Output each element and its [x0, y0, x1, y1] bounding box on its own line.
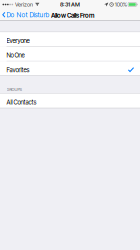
- staticText: All Contacts: [7, 98, 37, 106]
- staticText: GROUPS: [7, 87, 22, 92]
- staticText: 100%: [115, 1, 127, 8]
- button[interactable]: Favorites: [0, 61, 140, 75]
- staticText: Allow Calls From: [51, 12, 94, 19]
- staticText: Favorites: [7, 66, 30, 74]
- staticText: No One: [7, 52, 25, 59]
- button[interactable]: Everyone: [0, 32, 140, 46]
- staticText: Verizon: [15, 1, 33, 8]
- staticText: 8:31 AM: [60, 1, 80, 8]
- button[interactable]: All Contacts: [0, 94, 140, 108]
- button[interactable]: No One: [0, 47, 140, 61]
- staticText: Do Not Disturb: [7, 11, 50, 19]
- staticText: Everyone: [7, 37, 30, 44]
- button[interactable]: Do Not Disturb: [0, 9, 52, 20]
